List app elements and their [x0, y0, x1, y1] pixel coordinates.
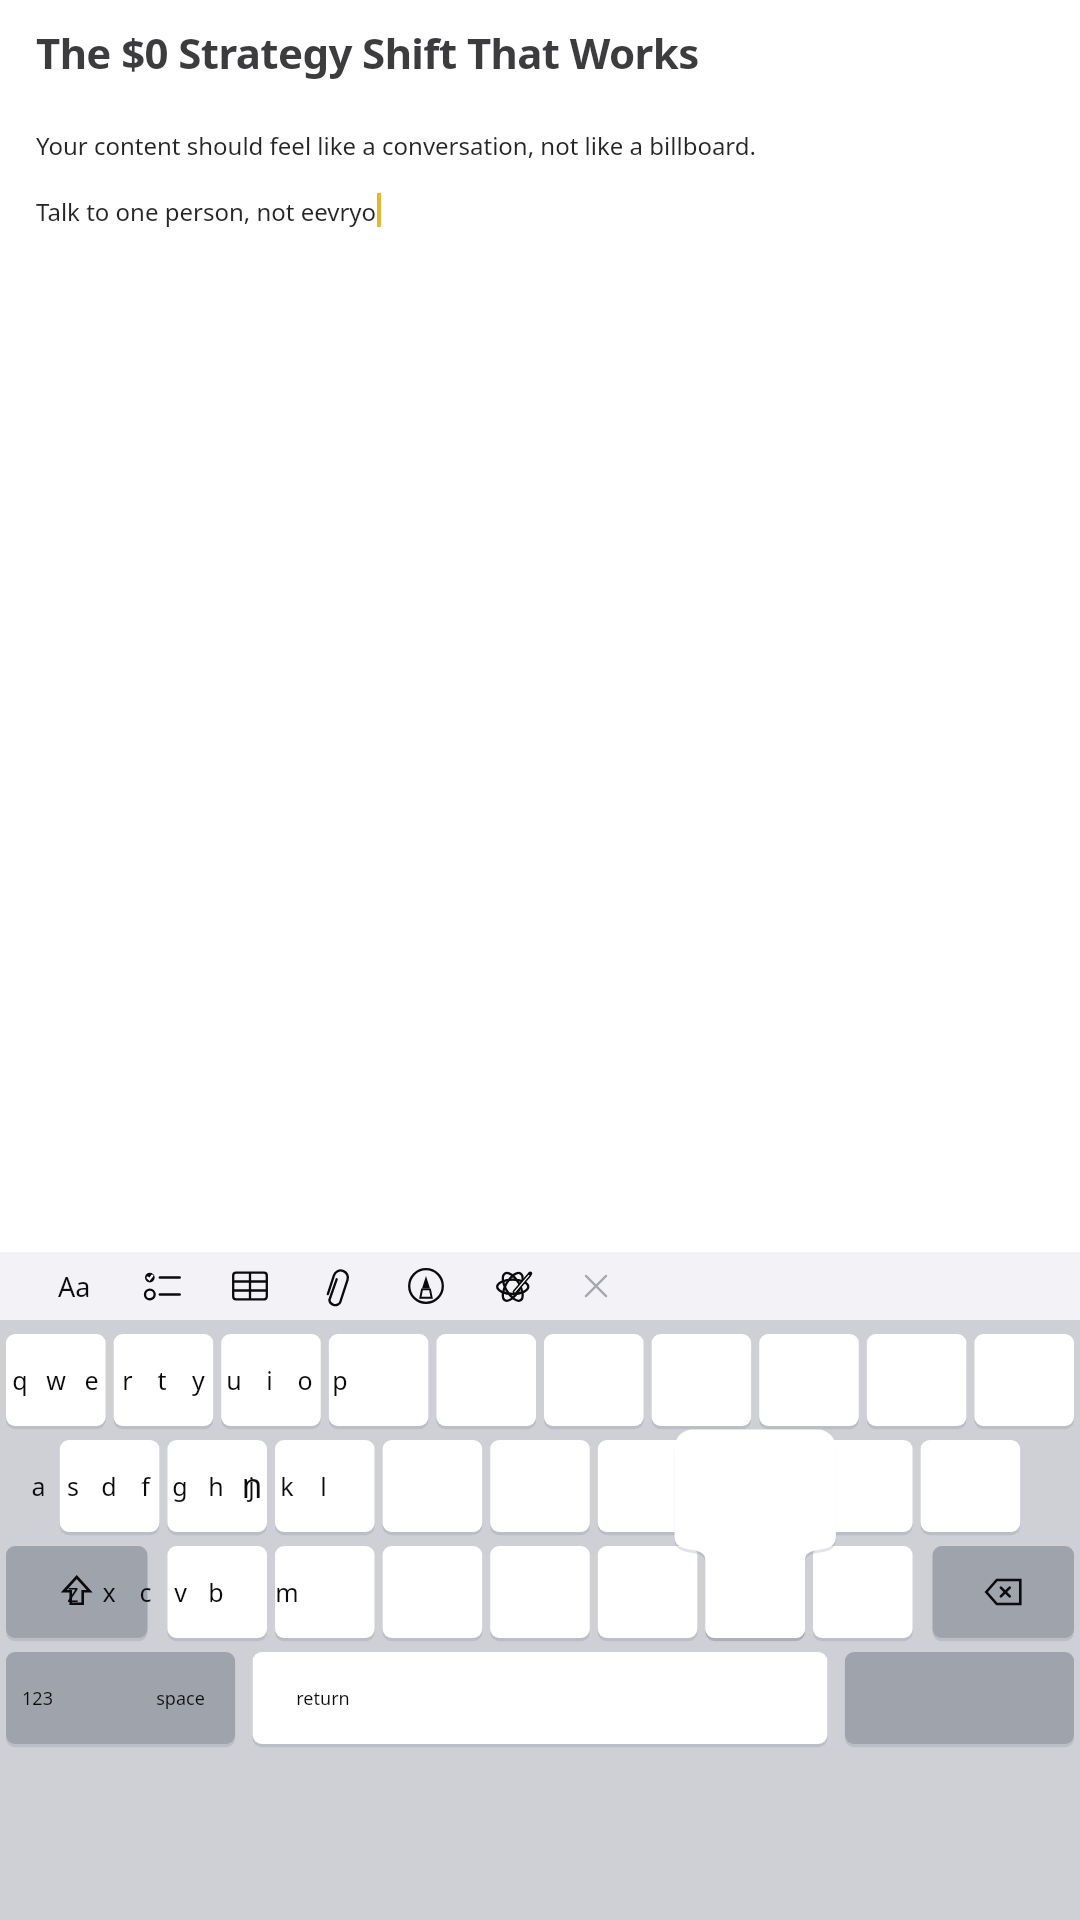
button[interactable]: Space	[87, 1652, 273, 1744]
button[interactable]: e	[77, 1334, 105, 1426]
button[interactable]: l	[309, 1440, 337, 1532]
button[interactable]: x	[95, 1546, 123, 1638]
button[interactable]: Shift	[6, 1546, 45, 1638]
staticText: j	[248, 1469, 255, 1503]
staticText: e	[84, 1363, 99, 1397]
button[interactable]: Markup	[398, 1258, 454, 1314]
staticText: h	[208, 1469, 224, 1503]
staticText: Aa	[58, 1268, 91, 1305]
staticText: q	[12, 1363, 28, 1397]
button[interactable]: o	[291, 1334, 319, 1426]
button[interactable]: j	[237, 1440, 265, 1532]
staticText: d	[101, 1469, 117, 1503]
button[interactable]: w	[42, 1334, 70, 1426]
staticText: t	[157, 1363, 167, 1397]
staticText: x	[102, 1575, 116, 1609]
staticText: c	[139, 1575, 152, 1609]
button[interactable]: q	[6, 1334, 34, 1426]
button[interactable]: a	[24, 1440, 52, 1532]
staticText: y	[192, 1363, 205, 1397]
button[interactable]: Table	[222, 1258, 278, 1314]
button[interactable]: b	[202, 1546, 230, 1638]
button[interactable]: z	[59, 1546, 87, 1638]
staticText: u	[226, 1363, 242, 1397]
staticText: return	[296, 1686, 350, 1711]
staticText: b	[208, 1575, 224, 1609]
button[interactable]: Numbers	[6, 1652, 69, 1744]
staticText: l	[320, 1469, 327, 1503]
button[interactable]: u	[220, 1334, 248, 1426]
staticText: space	[156, 1686, 205, 1711]
staticText: Talk to one person, not eevryo	[36, 195, 377, 228]
staticText: v	[174, 1575, 187, 1609]
button[interactable]: g	[166, 1440, 194, 1532]
staticText: The $0 Strategy Shift That Works	[36, 24, 699, 81]
button[interactable]: f	[131, 1440, 159, 1532]
staticText: p	[332, 1363, 348, 1397]
staticText: n	[241, 1462, 263, 1508]
staticText: 123	[22, 1686, 53, 1711]
button[interactable]: h	[202, 1440, 230, 1532]
button[interactable]: k	[273, 1440, 301, 1532]
staticText: r	[122, 1363, 133, 1397]
button[interactable]: p	[326, 1334, 354, 1426]
button[interactable]: Checklist	[134, 1258, 190, 1314]
button[interactable]: n	[237, 1546, 265, 1638]
button[interactable]: c	[131, 1546, 159, 1638]
staticText: s	[67, 1469, 79, 1503]
button[interactable]: Scribble	[486, 1258, 542, 1314]
button[interactable]: r	[113, 1334, 141, 1426]
button[interactable]: t	[148, 1334, 176, 1426]
button[interactable]: d	[95, 1440, 123, 1532]
staticText: Your content should feel like a conversa…	[36, 129, 756, 162]
button[interactable]: v	[166, 1546, 194, 1638]
button[interactable]: Close keyboard	[568, 1258, 624, 1314]
button[interactable]: y	[184, 1334, 212, 1426]
button[interactable]: Return	[291, 1652, 354, 1744]
staticText: w	[46, 1363, 66, 1397]
staticText: f	[141, 1469, 150, 1503]
button[interactable]: Attach file	[310, 1258, 366, 1314]
button[interactable]: s	[59, 1440, 87, 1532]
staticText: i	[266, 1363, 273, 1397]
button[interactable]: Text format	[46, 1258, 102, 1314]
button[interactable]: m	[273, 1546, 301, 1638]
staticText: m	[275, 1575, 299, 1609]
staticText: k	[280, 1469, 294, 1503]
staticText: a	[31, 1469, 46, 1503]
button[interactable]: i	[255, 1334, 283, 1426]
staticText: g	[172, 1469, 188, 1503]
staticText: o	[297, 1363, 313, 1397]
staticText: z	[67, 1575, 79, 1609]
